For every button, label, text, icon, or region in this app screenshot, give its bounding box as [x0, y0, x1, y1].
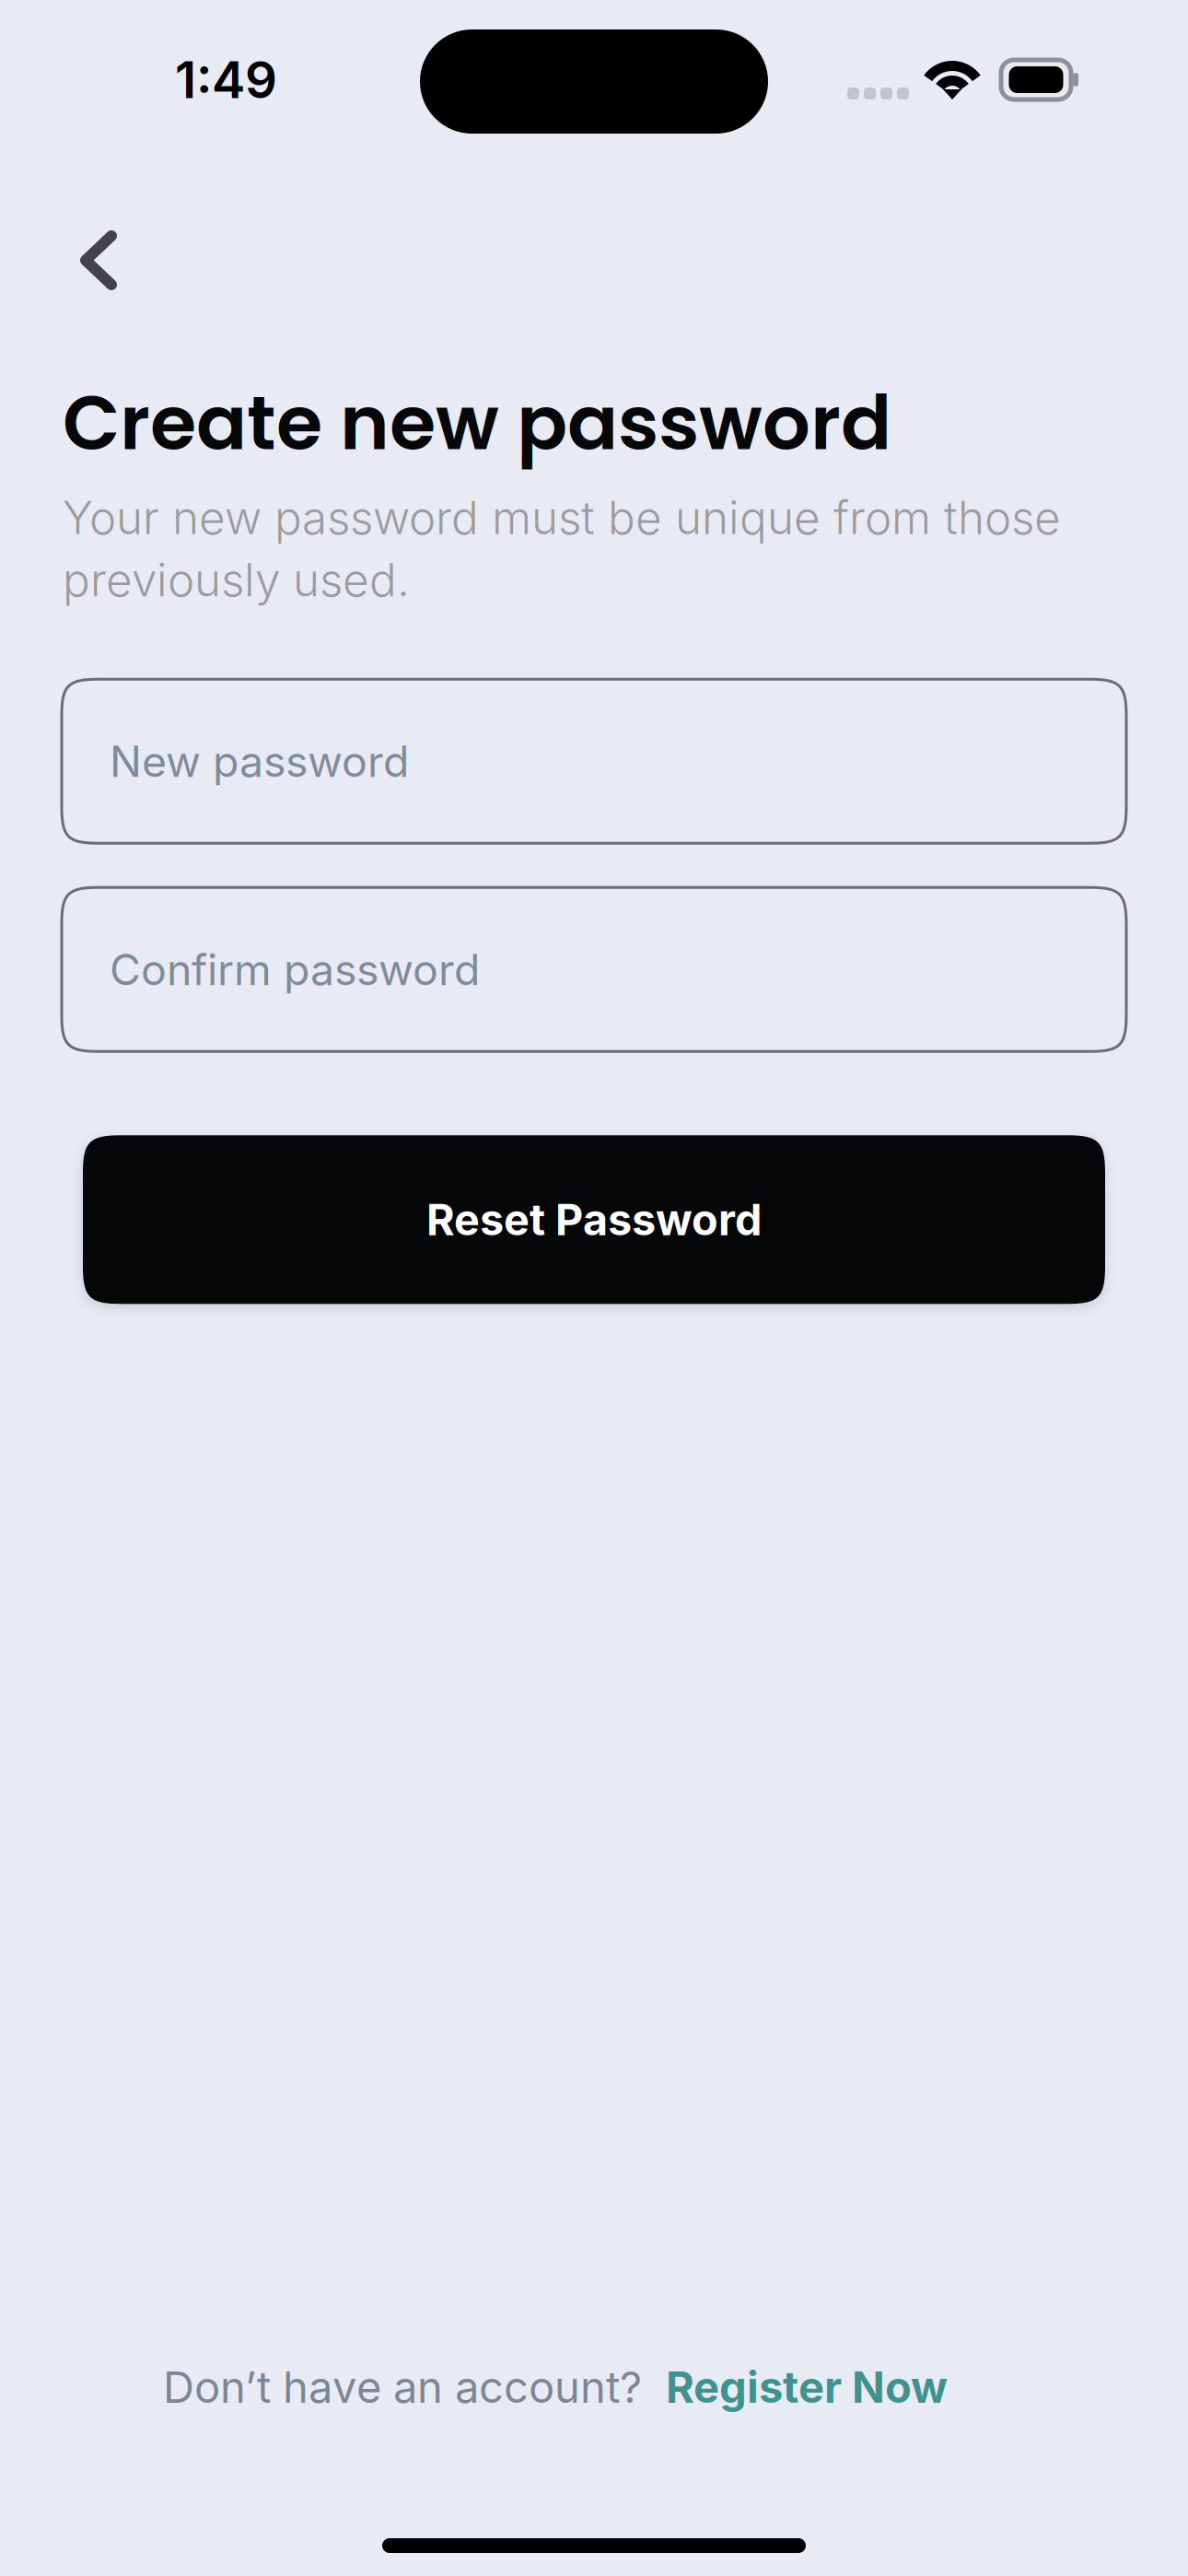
- button[interactable]: New password: [62, 679, 1126, 843]
- staticText: Create new password: [63, 370, 891, 475]
- staticText: New password: [110, 735, 409, 787]
- staticText: Reset Password: [426, 1194, 762, 1246]
- staticText: Confirm password: [110, 944, 480, 995]
- staticText: Don’t have an account?: [163, 2361, 642, 2413]
- button[interactable]: Register Now: [666, 2348, 948, 2426]
- staticText: Register Now: [666, 2361, 948, 2413]
- button[interactable]: Confirm password: [62, 887, 1126, 1051]
- staticText: 1:49: [175, 49, 277, 110]
- staticText: Your new password must be unique from th…: [63, 490, 1061, 607]
- button[interactable]: Reset Password: [83, 1135, 1105, 1304]
- button[interactable]: Back: [43, 205, 154, 316]
